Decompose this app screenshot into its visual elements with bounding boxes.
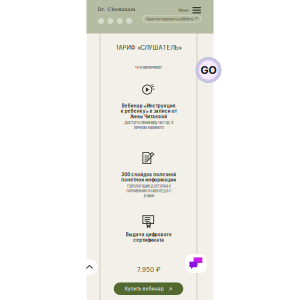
staticText: Вебинар «Инструкция к ребенку» в записи … <box>120 103 176 119</box>
staticText: Купить вебинар <box>125 286 164 291</box>
staticText: Выдача цифрового сертификата <box>125 232 171 243</box>
button[interactable]: VKontakte <box>98 18 104 24</box>
button[interactable]: Меню <box>178 7 201 13</box>
staticText: ↗ <box>168 285 172 292</box>
staticText: ТАРИФ «СЛУШАТЕЛЬ» <box>115 44 181 51</box>
button[interactable]: Купить вебинар <box>114 282 183 295</box>
staticText: GO <box>200 63 216 76</box>
staticText: Что включено? <box>135 65 162 70</box>
button[interactable]: Instagram <box>126 18 132 24</box>
button[interactable]: YouTube <box>117 18 123 24</box>
staticText: Dr. Chestanara <box>97 7 135 12</box>
button[interactable]: Зарегистрироваться/Войти <box>143 16 201 22</box>
button[interactable]: Telegram <box>107 18 113 24</box>
button[interactable]: Scroll to top <box>81 259 97 275</box>
staticText: Зарегистрироваться/Войти <box>146 17 193 21</box>
staticText: 300 слайдов полезной понятной информации <box>121 172 176 182</box>
staticText: Презентация доступна к скачиванию и навс… <box>126 184 171 198</box>
staticText: ↗ <box>195 17 198 21</box>
staticText: Доступ к вебинару на год в личном кабине… <box>124 120 173 130</box>
staticText: Меню <box>178 8 188 12</box>
button[interactable]: Dr. Chestanara <box>97 7 135 12</box>
staticText: 7.950 ₽ <box>137 266 160 273</box>
button[interactable]: Open chat <box>185 254 206 273</box>
